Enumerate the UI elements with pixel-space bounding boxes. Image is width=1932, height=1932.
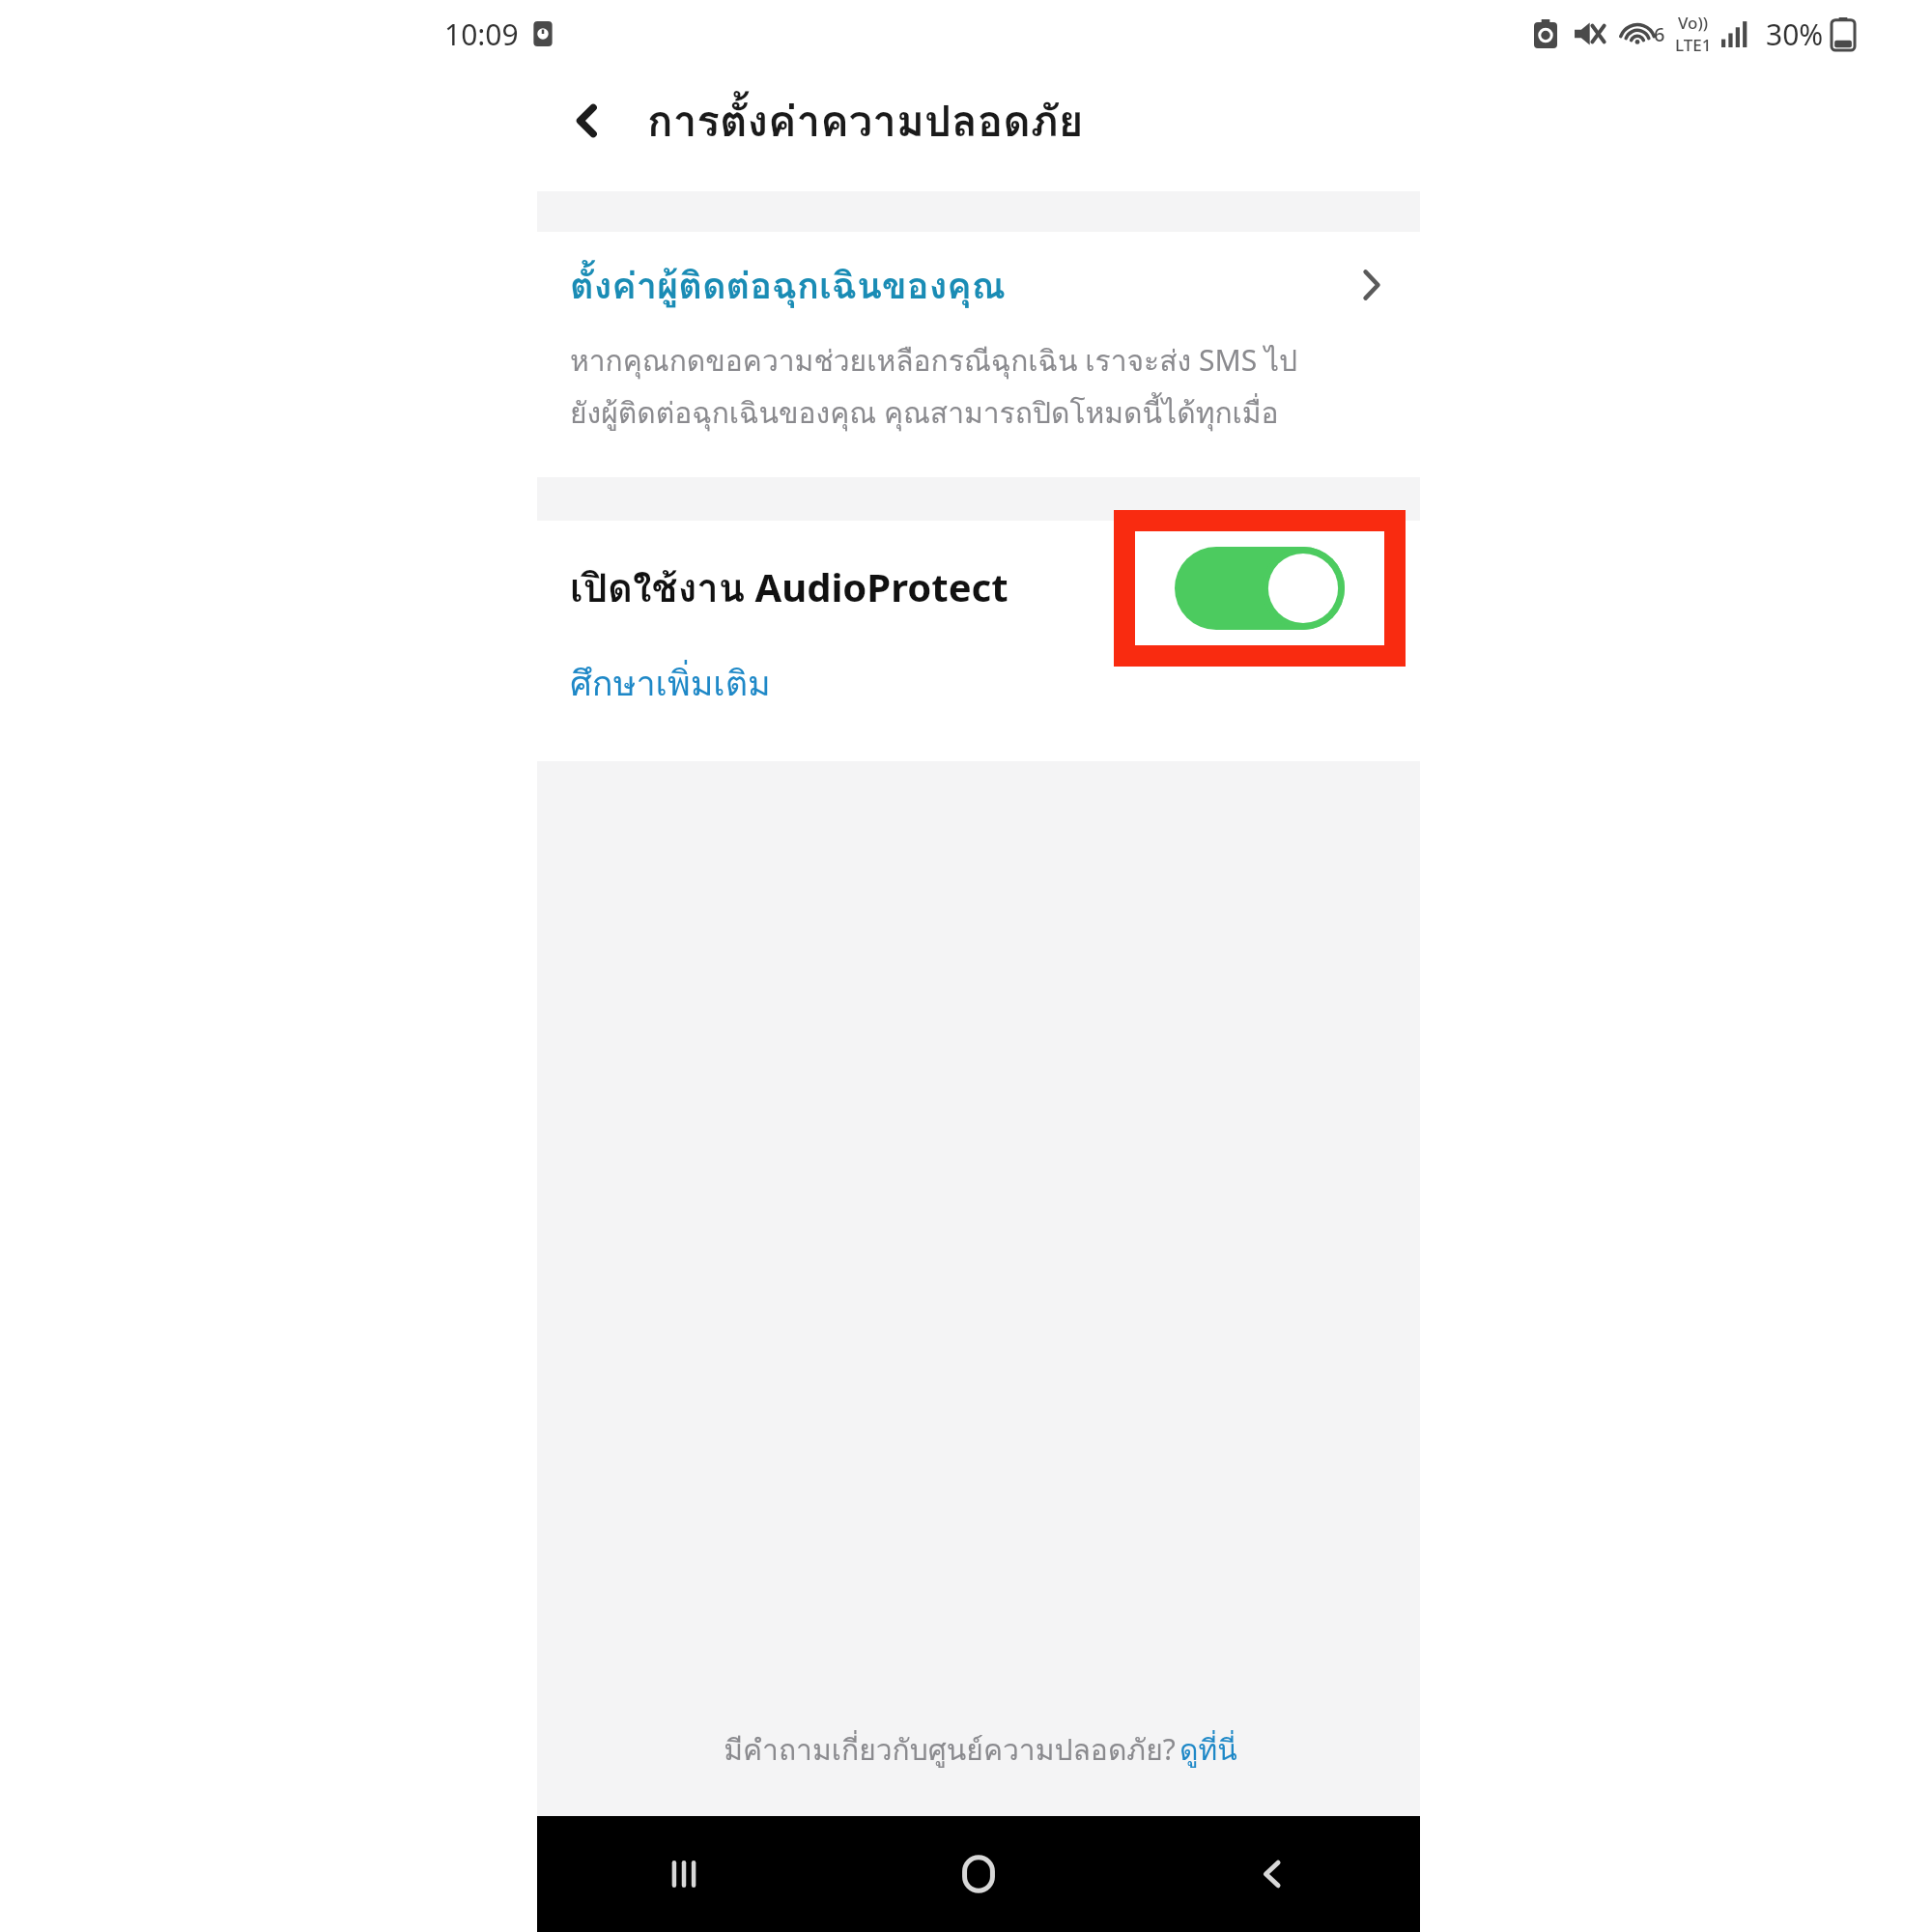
staticText: ศึกษาเพิ่มเติม: [570, 656, 771, 711]
button[interactable]: Back: [1125, 1816, 1420, 1932]
staticText: 6: [1654, 21, 1665, 47]
staticText: ยังผู้ติดต่อฉุกเฉินของคุณ คุณสามารถปิดโห…: [570, 390, 1279, 437]
button[interactable]: Back: [551, 84, 624, 157]
staticText: ดูที่นี่: [1179, 1727, 1237, 1774]
staticText: 30%: [1766, 14, 1824, 54]
staticText: Vo)): [1678, 12, 1709, 34]
staticText: มีคำถามเกี่ยวกับศูนย์ความปลอดภัย?: [720, 1727, 1179, 1774]
button[interactable]: Recent apps: [537, 1816, 831, 1932]
button[interactable]: ศึกษาเพิ่มเติม: [570, 656, 771, 711]
staticText: LTE1: [1675, 34, 1712, 56]
staticText: 10:09: [444, 14, 519, 54]
button[interactable]: Home: [831, 1816, 1125, 1932]
staticText: เปิดใช้งาน AudioProtect: [570, 557, 1009, 619]
button[interactable]: Enable AudioProtect: [1175, 547, 1345, 630]
staticText: ตั้งค่าผู้ติดต่อฉุกเฉินของคุณ: [570, 256, 1006, 314]
staticText: หากคุณกดขอความช่วยเหลือกรณีฉุกเฉิน เราจะ…: [570, 338, 1298, 384]
button[interactable]: ดูที่นี่: [1179, 1727, 1237, 1774]
button[interactable]: ตั้งค่าผู้ติดต่อฉุกเฉินของคุณ: [537, 232, 1420, 338]
staticText: การตั้งค่าความปลอดภัย: [647, 87, 1084, 155]
